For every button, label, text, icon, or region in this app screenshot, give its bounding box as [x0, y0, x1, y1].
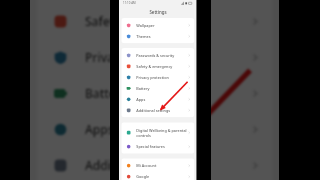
staticText: Additional settings [136, 108, 170, 113]
staticText: Privacy protection [85, 49, 189, 65]
button[interactable]: Passwords & security [37, 0, 272, 3]
button[interactable]: Passwords & security [121, 50, 194, 61]
button[interactable]: Apps [37, 111, 272, 147]
staticText: Privacy protection [136, 75, 169, 80]
button[interactable]: Themes [121, 31, 194, 42]
staticText: Battery [136, 86, 150, 91]
staticText: Settings [149, 9, 167, 15]
button[interactable]: Apps [121, 94, 194, 105]
button[interactable]: Battery [37, 75, 272, 111]
button[interactable]: Special features [121, 141, 194, 152]
staticText: Apps [85, 121, 114, 137]
staticText: 11:10 AM [123, 1, 136, 5]
button[interactable]: Additional settings [121, 105, 194, 116]
staticText: controls [136, 133, 151, 138]
staticText: Mi Account [136, 163, 156, 168]
button[interactable]: Privacy protection [37, 39, 272, 75]
staticText: Apps [136, 97, 145, 102]
staticText: Additional settings [85, 157, 193, 173]
button[interactable]: Battery [121, 83, 194, 94]
staticText: Google [136, 174, 149, 179]
staticText: Safety & emergency [85, 13, 200, 29]
staticText: Digital Wellbeing & parental [136, 128, 187, 133]
button[interactable]: Additional settings [37, 147, 272, 180]
button[interactable]: Mi Account [121, 160, 194, 171]
staticText: Special features [136, 144, 165, 149]
button[interactable]: Safety & emergency [121, 61, 194, 72]
button[interactable]: Safety & emergency [37, 3, 272, 39]
staticText: Themes [136, 34, 151, 39]
staticText: Battery [85, 85, 128, 101]
button[interactable]: Wallpaper [121, 20, 194, 31]
button[interactable]: Google [121, 171, 194, 180]
staticText: Passwords & security [136, 53, 174, 58]
staticText: Wallpaper [136, 23, 155, 28]
staticText: Safety & emergency [136, 64, 172, 69]
button[interactable]: Privacy protection [121, 72, 194, 83]
button[interactable]: Digital Wellbeing & parental [121, 124, 194, 141]
